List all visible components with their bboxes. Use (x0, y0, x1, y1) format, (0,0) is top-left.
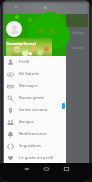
staticText: Amigos (19, 119, 34, 125)
button[interactable]: Home (41, 164, 51, 174)
button[interactable]: Le gusta mi perfil (4, 152, 66, 163)
staticText: Notificaciones (19, 131, 47, 137)
button[interactable]: Mensajes (4, 80, 66, 92)
staticText: old ago (72, 45, 85, 50)
button[interactable]: Gente cercana (4, 104, 66, 116)
button[interactable]: Back (21, 164, 31, 174)
button[interactable]: Notificaciones (4, 128, 66, 140)
staticText: Perfil (19, 59, 30, 65)
button[interactable]: Seguidores (4, 140, 66, 152)
staticText: tiene una foto nueva (6, 51, 40, 56)
staticText: Seguidores (19, 143, 42, 149)
staticText: Mi Galería (19, 71, 39, 77)
button[interactable]: Amigos (4, 116, 66, 128)
staticText: Buena gente (19, 95, 45, 101)
staticText: tiene una foto nueva (6, 36, 40, 41)
button[interactable]: Buena gente (4, 92, 66, 104)
staticText: davarias@gmail.com (6, 47, 40, 52)
staticText: Davarias Kernel (6, 41, 36, 46)
button[interactable]: Perfil (4, 56, 66, 68)
staticText: Gente cercana (19, 107, 48, 113)
staticText: Le gusta mi perfil (19, 155, 54, 161)
staticText: Mensajes (19, 83, 38, 89)
button[interactable]: Mi Galería (4, 68, 66, 80)
button[interactable]: Recents (61, 164, 71, 174)
staticText: old ago (72, 30, 85, 35)
